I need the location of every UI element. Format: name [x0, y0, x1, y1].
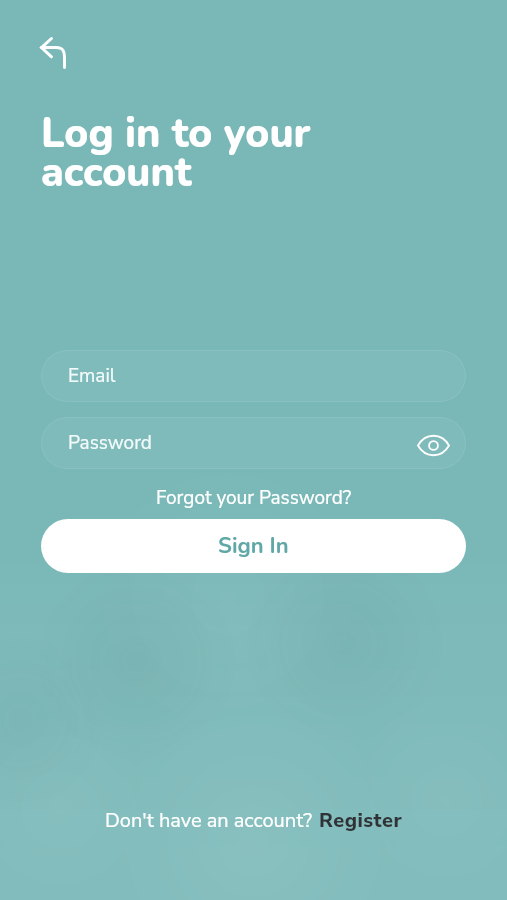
staticText: Log in to your account: [41, 106, 311, 200]
button[interactable]: Show password: [411, 423, 455, 467]
button[interactable]: Sign In: [41, 519, 466, 573]
button[interactable]: Register: [319, 807, 403, 834]
staticText: Password: [68, 430, 152, 456]
staticText: Don't have an account?: [105, 807, 313, 834]
button[interactable]: Back: [18, 17, 90, 89]
staticText: Sign In: [218, 531, 289, 561]
button[interactable]: Email: [41, 350, 466, 402]
button[interactable]: Password: [41, 417, 466, 469]
staticText: Email: [68, 363, 116, 389]
button[interactable]: Forgot your Password?: [146, 482, 362, 514]
